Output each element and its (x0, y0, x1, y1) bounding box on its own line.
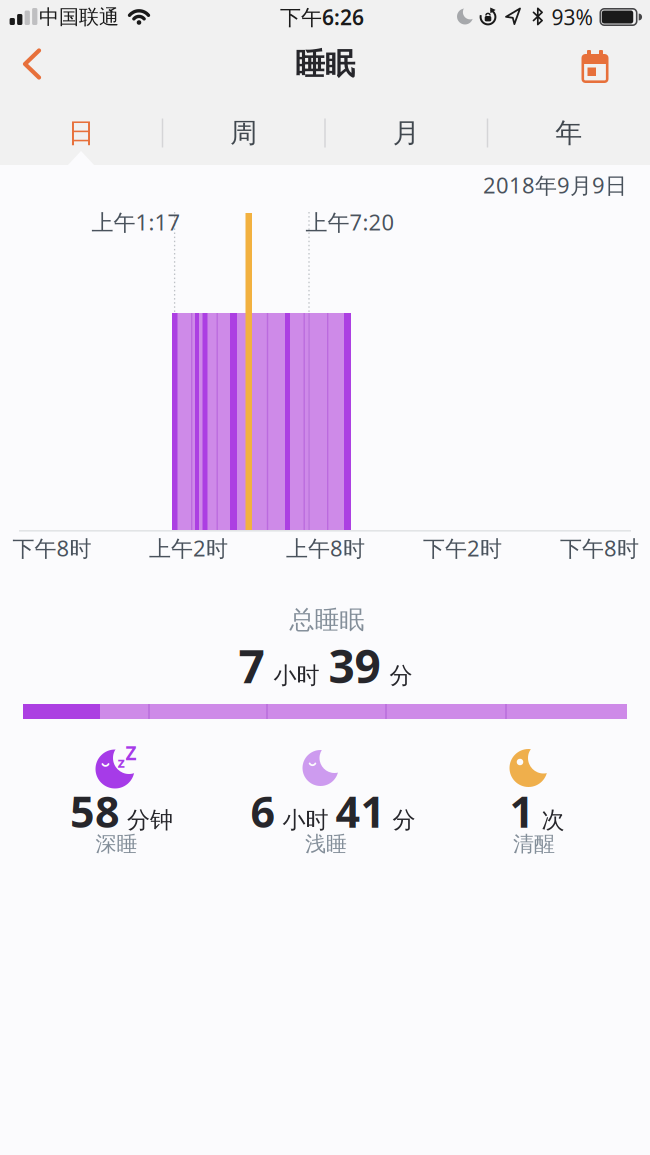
staticText: 7 (238, 634, 264, 697)
staticText: 39 (328, 634, 380, 697)
staticText: 分钟 (127, 805, 173, 834)
staticText: 下午8时 (560, 533, 639, 563)
staticText: 月 (393, 116, 420, 150)
staticText: 分 (392, 805, 415, 834)
button[interactable]: 日 (0, 106, 162, 160)
staticText: 中国联通 (39, 4, 119, 30)
staticText: 6 (250, 782, 275, 840)
button[interactable]: 年 (488, 106, 650, 160)
staticText: 小时 (273, 661, 319, 690)
staticText: 年 (555, 116, 582, 150)
staticText: 深睡 (95, 831, 137, 857)
staticText: 1 (509, 782, 534, 840)
button[interactable]: 返回 (22, 48, 44, 79)
staticText: 日 (68, 116, 95, 150)
staticText: 下午6:26 (280, 3, 364, 31)
button[interactable]: 周 (163, 106, 325, 160)
staticText: 41 (335, 782, 385, 840)
staticText: 上午7:20 (305, 207, 394, 237)
staticText: 清醒 (513, 831, 555, 857)
staticText: 2018年9月9日 (483, 170, 627, 200)
button[interactable]: 日历 (578, 46, 612, 84)
staticText: 小时 (282, 805, 328, 834)
staticText: 下午8时 (12, 533, 91, 563)
staticText: 次 (541, 805, 564, 834)
staticText: 上午2时 (149, 533, 228, 563)
staticText: 周 (230, 116, 257, 150)
staticText: 总睡眠 (289, 604, 364, 636)
staticText: 浅睡 (305, 831, 347, 857)
button[interactable]: 月 (325, 106, 487, 160)
staticText: 93% (551, 3, 592, 31)
staticText: z (117, 752, 124, 772)
staticText: 上午8时 (286, 533, 365, 563)
staticText: 下午2时 (423, 533, 502, 563)
staticText: 睡眠 (295, 45, 355, 83)
staticText: 分 (389, 661, 412, 690)
staticText: Z (125, 740, 136, 766)
staticText: 上午1:17 (91, 207, 180, 237)
staticText: 58 (70, 782, 120, 840)
